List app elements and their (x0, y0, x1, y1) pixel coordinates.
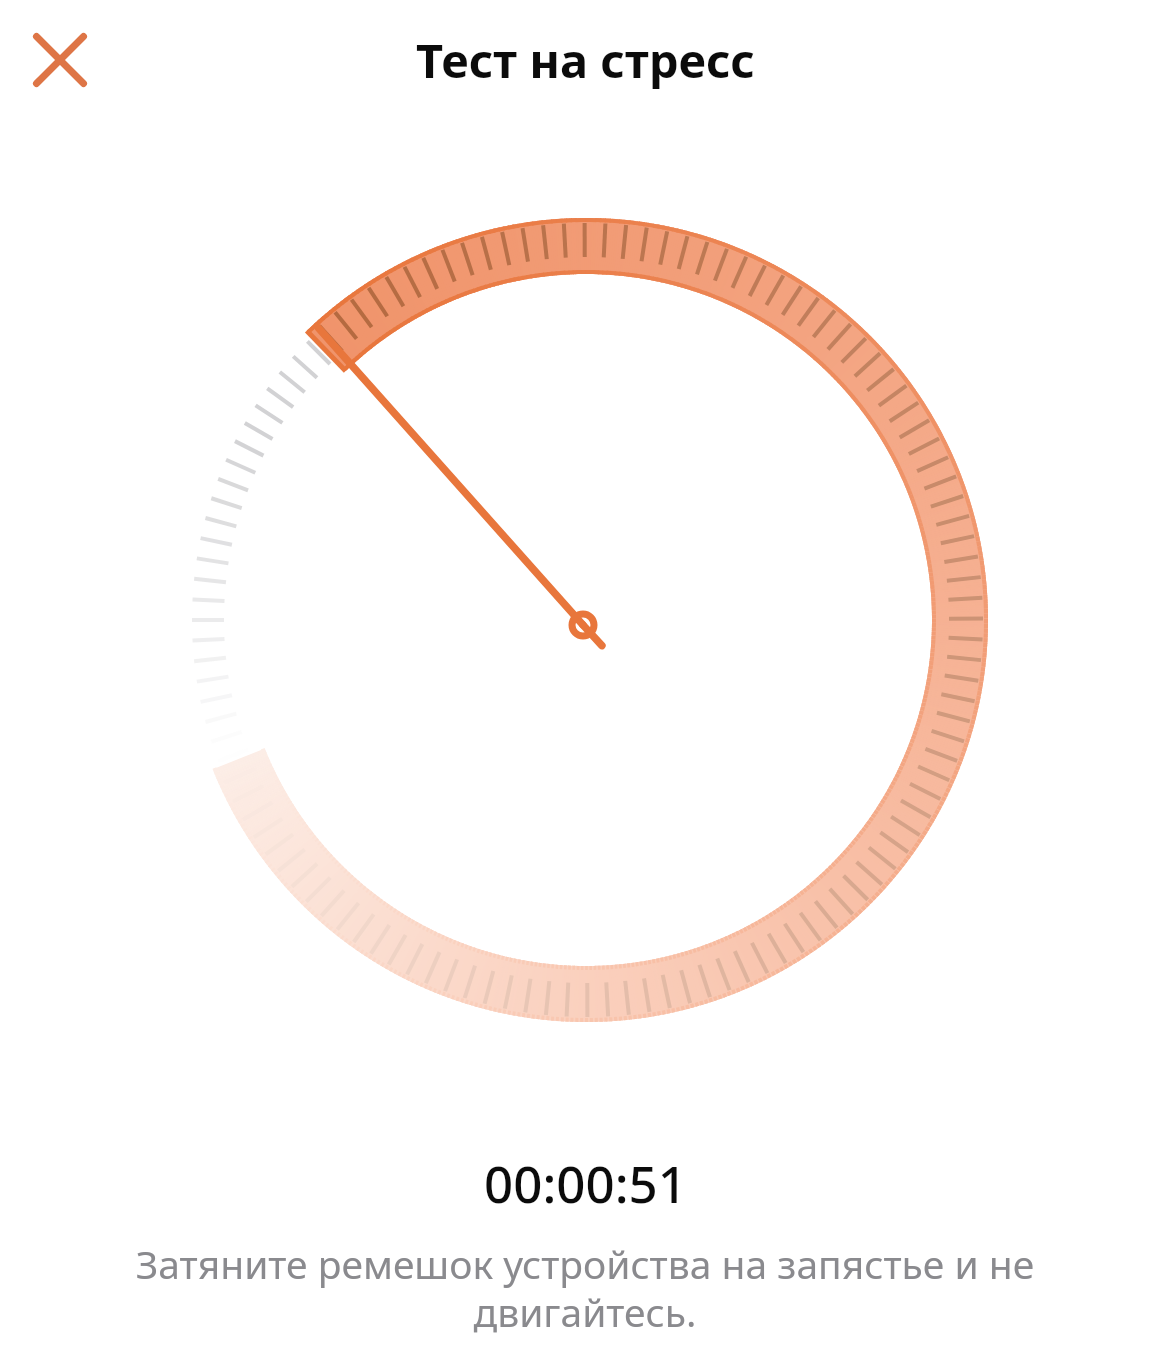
staticText: Тест на стресс (416, 28, 755, 92)
staticText: 00:00:51 (484, 1148, 687, 1217)
button[interactable]: Close (18, 18, 102, 102)
staticText: Затяните ремешок устройства на запястье … (120, 1237, 1050, 1339)
